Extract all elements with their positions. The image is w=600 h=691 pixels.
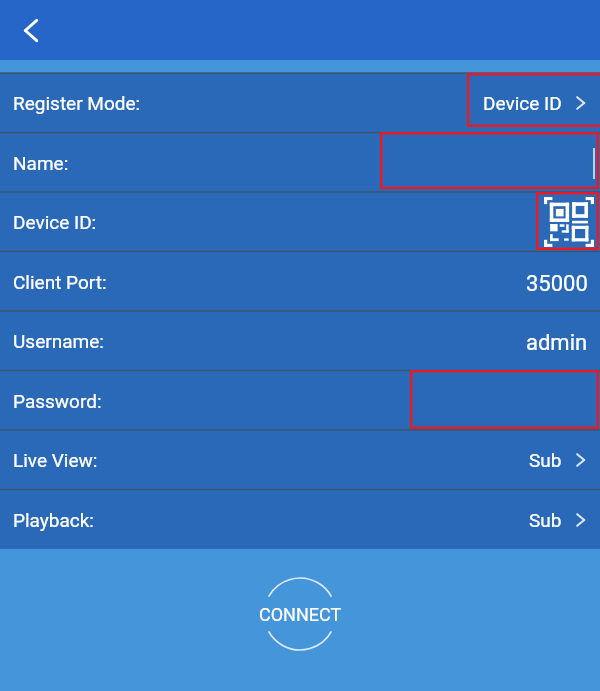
button[interactable]: CONNECT [240, 566, 360, 662]
staticText: Device ID: [13, 211, 97, 233]
staticText: Device ID [483, 92, 562, 114]
staticText: admin [526, 330, 588, 356]
staticText: Live View: [13, 449, 98, 471]
staticText: 35000 [526, 271, 588, 297]
staticText: Password: [13, 390, 102, 412]
button[interactable]: Username: [0, 311, 600, 371]
button[interactable]: Device ID: [0, 192, 600, 252]
button[interactable]: Back [24, 19, 38, 42]
button[interactable]: Register Mode: [0, 73, 600, 133]
staticText: Sub [529, 449, 562, 471]
button[interactable]: Live View: [0, 430, 600, 490]
staticText: Sub [529, 509, 562, 531]
button[interactable]: Client Port: [0, 252, 600, 312]
staticText: Register Mode: [13, 92, 141, 114]
staticText: Playback: [13, 509, 94, 531]
staticText: Name: [13, 152, 69, 174]
button[interactable]: Password: [0, 371, 600, 431]
staticText: Username: [13, 330, 104, 352]
staticText: Client Port: [13, 271, 107, 293]
staticText: CONNECT [259, 604, 342, 625]
button[interactable]: Playback: [0, 490, 600, 550]
button[interactable]: Name: [0, 133, 600, 193]
